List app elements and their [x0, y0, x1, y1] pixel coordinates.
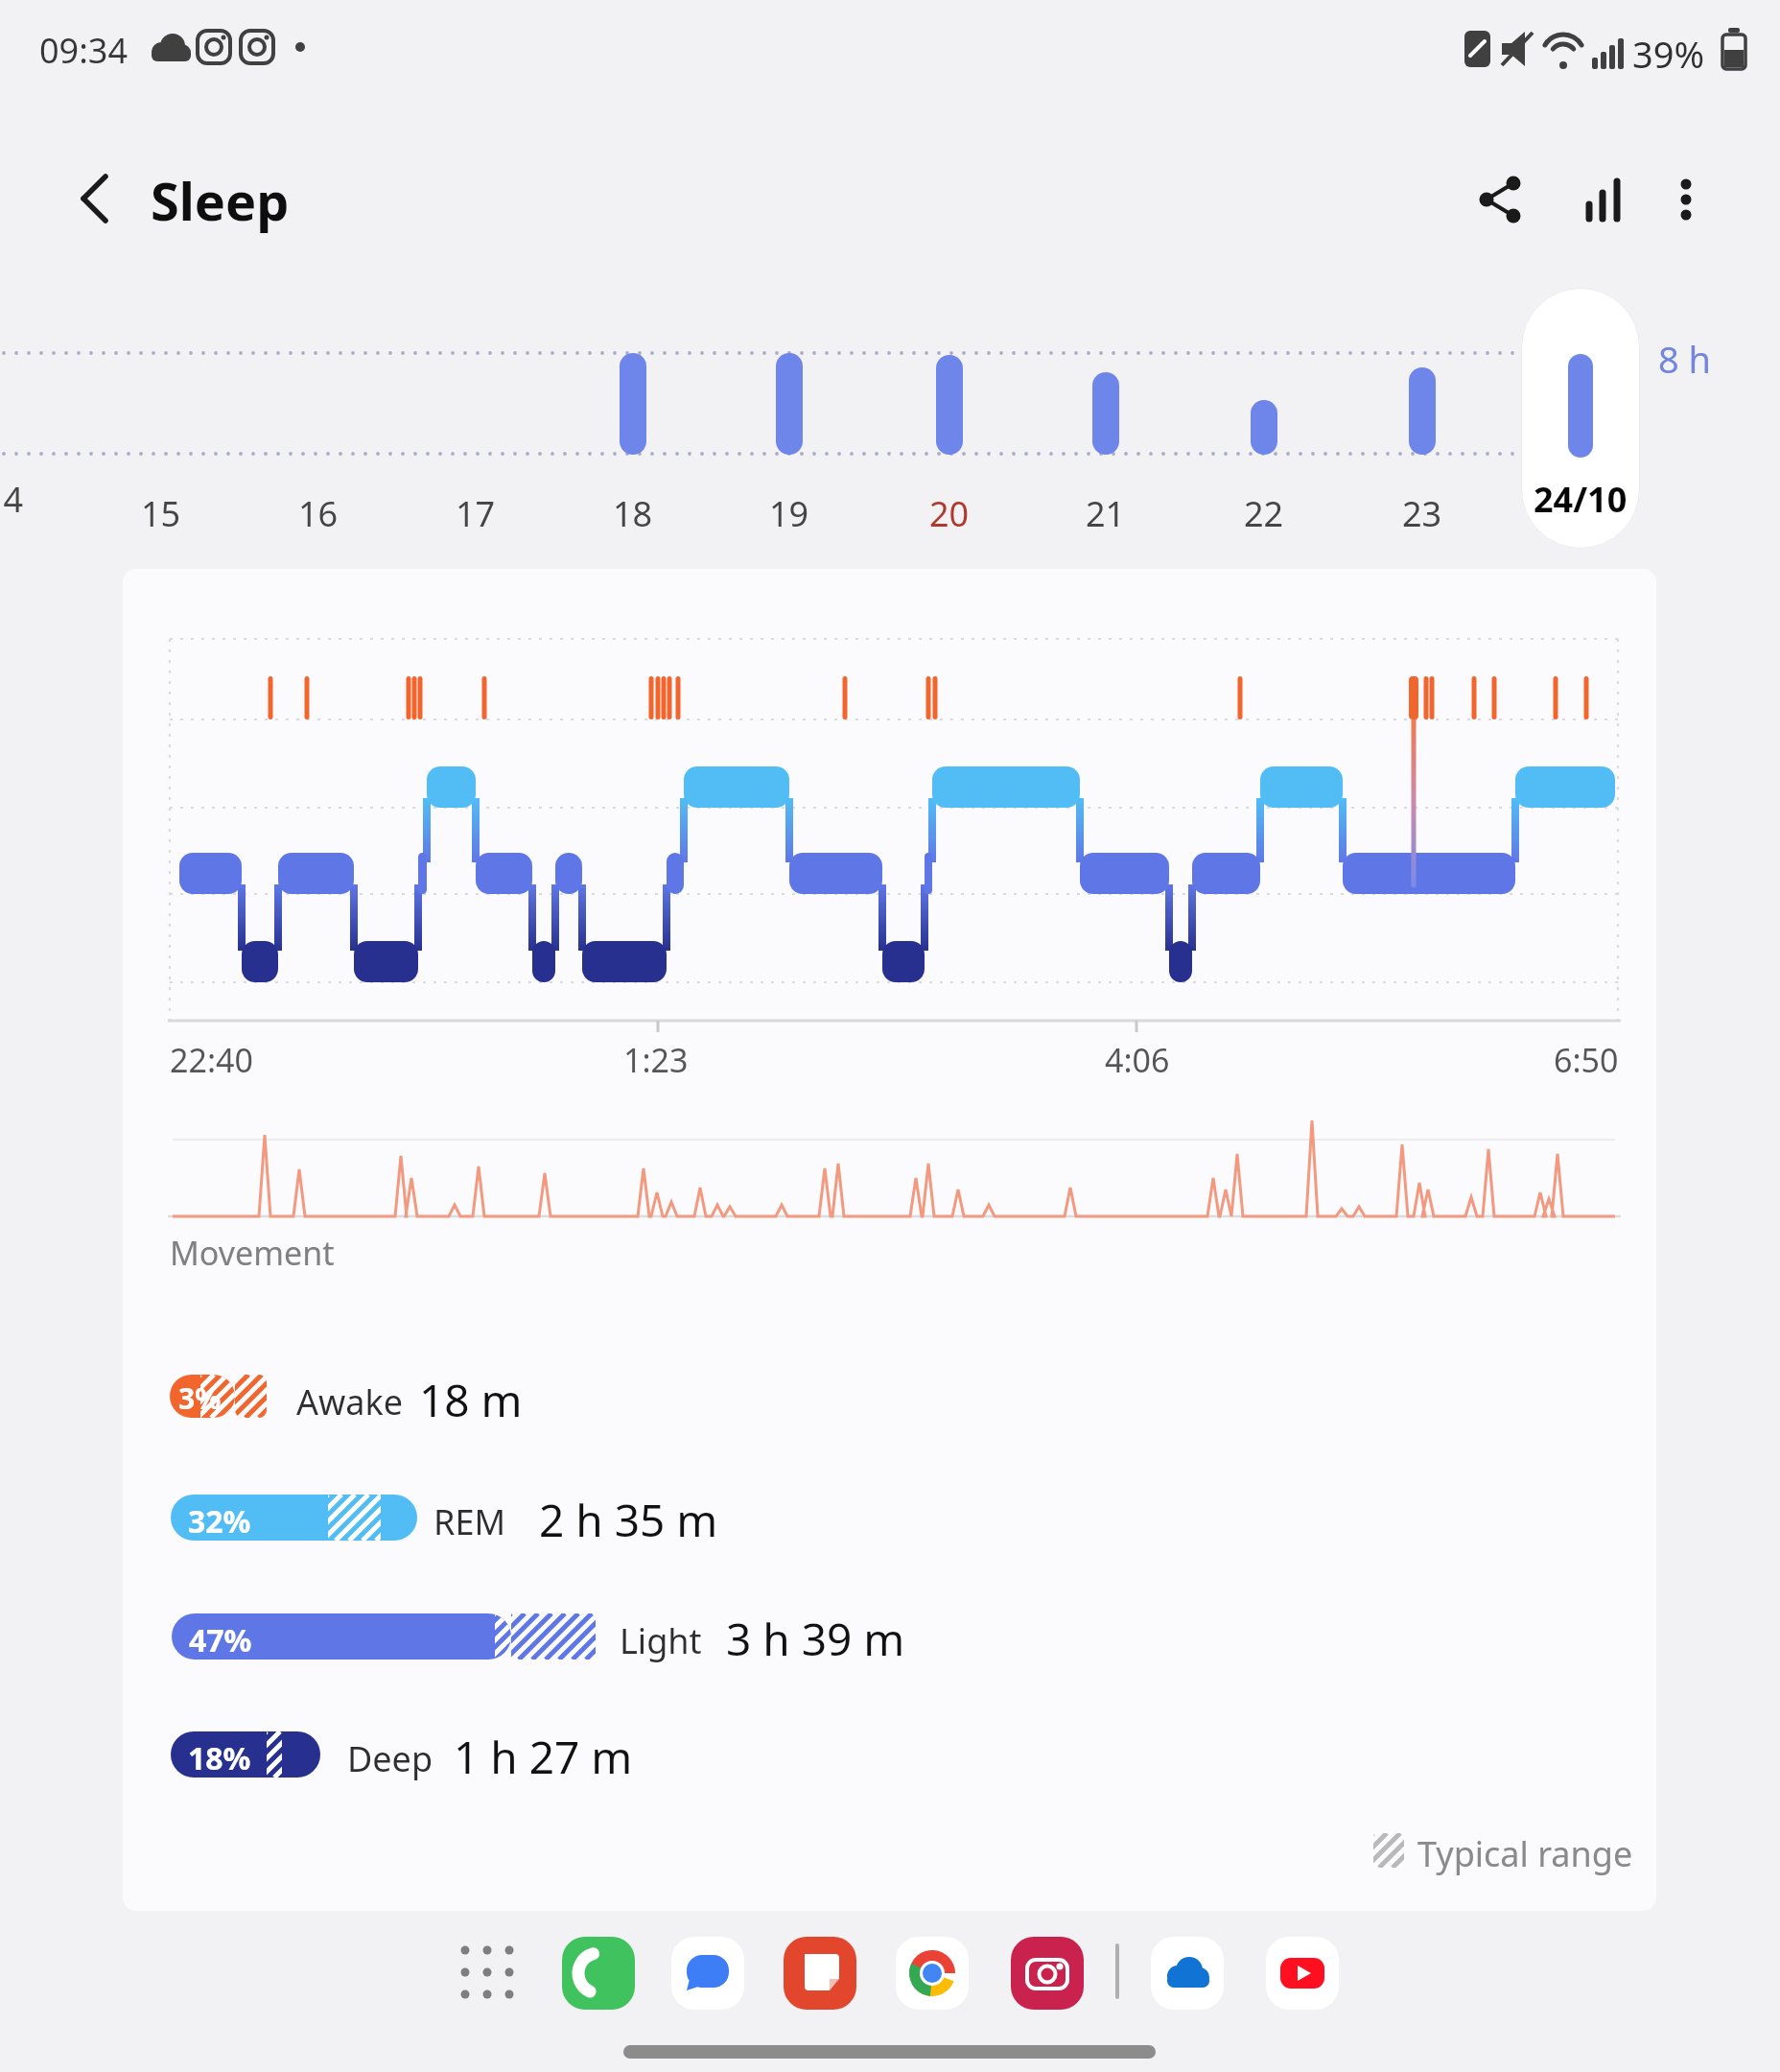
staticText: 14	[0, 476, 24, 523]
button[interactable]	[1011, 1937, 1084, 2010]
staticText: Deep	[347, 1735, 433, 1782]
staticText: REM	[433, 1498, 506, 1545]
button[interactable]	[451, 1936, 524, 2009]
button[interactable]: 15	[104, 317, 219, 537]
button[interactable]	[1151, 1937, 1224, 2010]
button[interactable]	[1571, 168, 1638, 235]
staticText: 15	[141, 490, 181, 537]
button[interactable]: 20	[892, 317, 1007, 537]
button[interactable]	[671, 1937, 744, 2010]
staticText: Sleep	[151, 165, 290, 236]
staticText: 19	[769, 490, 809, 537]
staticText: Awake	[296, 1378, 404, 1425]
button[interactable]	[1465, 168, 1533, 235]
staticText: Typical range	[1417, 1830, 1633, 1877]
staticText: 2 h 35 m	[539, 1490, 718, 1550]
staticText: 16	[298, 490, 339, 537]
button[interactable]	[562, 1937, 635, 2010]
button[interactable]: 22	[1206, 317, 1322, 537]
button[interactable]	[1521, 288, 1640, 549]
staticText: 22	[1244, 490, 1284, 537]
staticText: 1 h 27 m	[454, 1727, 633, 1787]
staticText: 39%	[1632, 29, 1705, 79]
staticText: 3 h 39 m	[726, 1609, 905, 1669]
button[interactable]: 17	[418, 317, 533, 537]
button[interactable]	[623, 2045, 1156, 2059]
button[interactable]	[896, 1937, 969, 2010]
staticText: 4:06	[1105, 1038, 1170, 1082]
staticText: Light	[620, 1617, 702, 1664]
staticText: 23	[1402, 490, 1442, 537]
staticText: 17	[456, 490, 496, 537]
staticText: 22:40	[170, 1038, 253, 1082]
button[interactable]	[784, 1937, 856, 2010]
staticText: 47%	[189, 1619, 252, 1661]
button[interactable]	[1657, 168, 1715, 235]
staticText: 1:23	[623, 1038, 689, 1082]
staticText: 09:34	[39, 27, 129, 74]
staticText: 32%	[188, 1500, 251, 1542]
button[interactable]: 18	[575, 317, 691, 537]
staticText: 6:50	[1554, 1038, 1619, 1082]
staticText: 20	[929, 490, 970, 537]
staticText: Movement	[170, 1231, 335, 1275]
button[interactable]: 21	[1048, 317, 1163, 537]
staticText: 8 h	[1658, 334, 1712, 384]
button[interactable]: 23	[1365, 317, 1480, 537]
staticText: 18 m	[419, 1370, 523, 1430]
button[interactable]	[1266, 1937, 1339, 2010]
staticText: 18%	[188, 1737, 251, 1779]
button[interactable]: 19	[732, 317, 847, 537]
button[interactable]: 16	[261, 317, 376, 537]
staticText: 24/10	[1534, 476, 1628, 523]
button[interactable]	[58, 163, 134, 240]
staticText: 18	[613, 490, 653, 537]
staticText: 3%	[178, 1378, 222, 1418]
staticText: 21	[1086, 490, 1126, 537]
